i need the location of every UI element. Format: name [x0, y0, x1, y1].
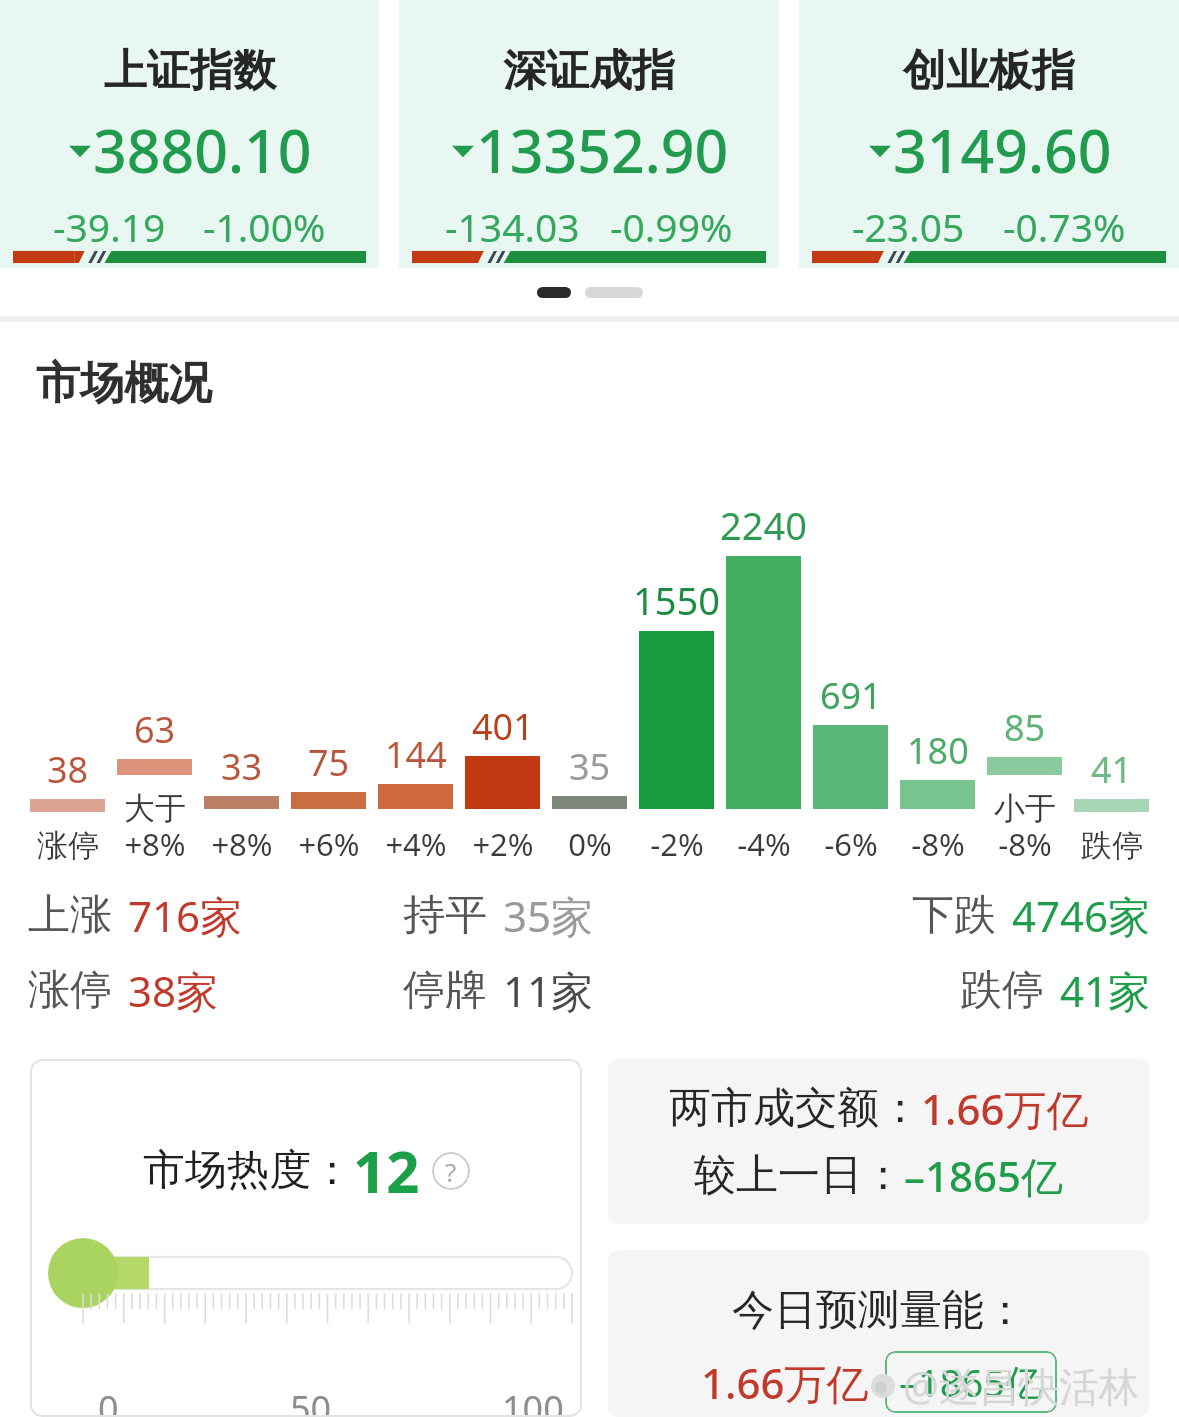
- staticText: +4%: [385, 823, 447, 865]
- staticText: 3149.60: [893, 110, 1112, 190]
- staticText: 691: [820, 671, 882, 720]
- staticText: -8%: [911, 823, 965, 865]
- staticText: 持平: [403, 889, 487, 942]
- staticText: 41: [1091, 745, 1133, 794]
- staticText: 下跌: [912, 889, 996, 942]
- staticText: -2%: [650, 823, 704, 865]
- staticText: 144: [385, 730, 447, 779]
- staticText: 上证指数: [104, 44, 276, 98]
- staticText: 38: [47, 745, 89, 794]
- staticText: 12: [353, 1131, 420, 1210]
- staticText: –1865亿: [899, 1356, 1043, 1408]
- staticText: 4746家: [1012, 887, 1151, 944]
- staticText: 小于 -8%: [994, 789, 1056, 865]
- staticText: 跌停: [960, 964, 1044, 1017]
- staticText: @遂昌快活林: [903, 1358, 1139, 1413]
- staticText: 1.66万亿: [701, 1354, 869, 1411]
- staticText: 50: [290, 1384, 332, 1417]
- staticText: 停牌: [403, 964, 487, 1017]
- staticText: ?: [445, 1154, 457, 1189]
- staticText: 市场概况: [36, 356, 212, 411]
- staticText: 11家: [503, 962, 594, 1019]
- staticText: –1865亿: [904, 1147, 1064, 1204]
- staticText: 0%: [568, 823, 612, 865]
- staticText: 大于 +8%: [124, 789, 186, 865]
- staticText: 180: [907, 726, 969, 775]
- staticText: 创业板指: [903, 44, 1075, 98]
- staticText: 13352.90: [476, 110, 729, 190]
- staticText: 3880.10: [93, 110, 312, 190]
- staticText: 0: [98, 1384, 119, 1417]
- staticText: 2240: [720, 499, 807, 551]
- staticText: -23.05: [852, 200, 965, 253]
- staticText: 涨停: [37, 826, 99, 865]
- staticText: -4%: [737, 823, 791, 865]
- staticText: 85: [1004, 703, 1046, 752]
- staticText: -134.03: [445, 200, 580, 253]
- staticText: 上涨: [28, 889, 112, 942]
- staticText: 75: [308, 738, 350, 787]
- staticText: -6%: [824, 823, 878, 865]
- staticText: 涨停: [28, 964, 112, 1017]
- button[interactable]: 两市成交额：: [608, 1059, 1149, 1224]
- staticText: 深证成指: [503, 44, 675, 98]
- staticText: 63: [134, 705, 176, 754]
- staticText: +2%: [472, 823, 534, 865]
- staticText: -39.19: [53, 200, 166, 253]
- staticText: 35家: [503, 887, 594, 944]
- button[interactable]: 上证指数: [0, 0, 379, 268]
- staticText: +6%: [298, 823, 360, 865]
- staticText: 41家: [1060, 962, 1151, 1019]
- staticText: 1.66万亿: [921, 1080, 1089, 1137]
- staticText: 33: [221, 742, 263, 791]
- staticText: 两市成交额：: [669, 1082, 921, 1135]
- staticText: 今日预测量能：: [732, 1284, 1026, 1337]
- button[interactable]: 说明: [432, 1152, 470, 1190]
- staticText: -0.73%: [1003, 200, 1126, 253]
- button[interactable]: 市场热度：: [30, 1059, 582, 1417]
- staticText: 401: [472, 702, 534, 751]
- button[interactable]: 今日预测量能：: [608, 1250, 1149, 1417]
- button[interactable]: 创业板指: [799, 0, 1179, 268]
- staticText: 较上一日：: [694, 1149, 904, 1202]
- staticText: +8%: [211, 823, 273, 865]
- staticText: 35: [569, 742, 611, 791]
- button[interactable]: 深证成指: [399, 0, 779, 268]
- staticText: -1.00%: [203, 200, 326, 253]
- staticText: 716家: [128, 887, 243, 944]
- staticText: 100: [502, 1384, 564, 1417]
- staticText: -0.99%: [610, 200, 733, 253]
- staticText: 市场热度：: [143, 1144, 353, 1197]
- staticText: 跌停: [1081, 826, 1143, 865]
- staticText: 38家: [128, 962, 219, 1019]
- staticText: 1550: [633, 574, 720, 626]
